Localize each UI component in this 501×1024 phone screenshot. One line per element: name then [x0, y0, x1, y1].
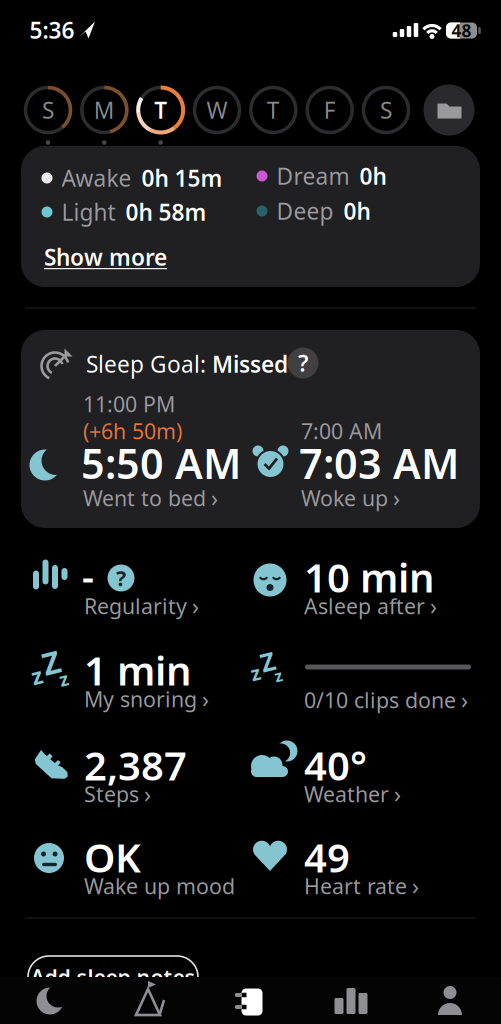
staticText: ›	[394, 779, 401, 809]
staticText: 7:00 AM	[301, 417, 382, 445]
button[interactable]: Sleep sessions	[423, 84, 474, 135]
button[interactable]: T	[132, 82, 189, 162]
button[interactable]: T	[245, 82, 302, 162]
staticText: ›	[430, 591, 437, 621]
staticText: S	[380, 95, 392, 125]
staticText: OK	[84, 830, 141, 883]
button[interactable]: M	[76, 82, 133, 162]
staticText: z	[59, 667, 68, 691]
staticText: ›	[144, 779, 151, 809]
staticText: Went to bed	[83, 484, 206, 512]
button[interactable]: F	[301, 82, 358, 162]
button[interactable]: Show more	[44, 242, 167, 272]
button[interactable]: About regularity	[107, 564, 134, 592]
staticText: ›	[461, 685, 468, 715]
staticText: Weather	[304, 780, 389, 808]
staticText: Steps	[84, 780, 139, 808]
button[interactable]: Went to bed	[83, 483, 218, 513]
staticText: 0h	[359, 161, 386, 191]
button[interactable]: 0/10 clips done	[304, 685, 468, 715]
staticText: 49	[304, 830, 350, 883]
staticText: ›	[211, 483, 218, 513]
staticText: 0h	[343, 196, 370, 226]
staticText: ›	[192, 591, 199, 621]
staticText: 5:50 AM	[81, 436, 241, 490]
staticText: W	[206, 95, 227, 125]
staticText: Deep	[276, 196, 333, 226]
staticText: z	[274, 665, 282, 686]
staticText: 1 min	[84, 643, 192, 696]
button[interactable]: OK	[84, 838, 274, 902]
staticText: Heart rate	[304, 872, 407, 900]
button[interactable]: Woke up	[301, 483, 400, 513]
staticText: Missed	[212, 349, 288, 379]
staticText: 48	[451, 19, 471, 42]
button[interactable]: W	[188, 82, 245, 162]
staticText: 5:36	[29, 15, 74, 45]
button[interactable]: Profile	[410, 977, 490, 1024]
staticText: Dream	[276, 161, 349, 191]
staticText: ›	[412, 871, 419, 901]
staticText: 0h 15m	[141, 163, 222, 193]
staticText: z	[251, 659, 261, 686]
staticText: Add sleep notes	[30, 963, 195, 991]
staticText: Regularity	[84, 592, 187, 620]
staticText: T	[267, 95, 280, 125]
staticText: 0/10 clips done	[304, 686, 456, 714]
staticText: z	[31, 660, 42, 691]
staticText: M	[94, 95, 115, 125]
staticText: ?	[298, 348, 308, 378]
staticText: 0h 58m	[125, 197, 206, 227]
button[interactable]: Sleep	[10, 977, 90, 1024]
staticText: Woke up	[301, 484, 388, 512]
staticText: Sleep Goal:	[86, 349, 212, 379]
button[interactable]: About sleep goal	[287, 347, 318, 378]
button[interactable]: Regularity	[84, 591, 199, 621]
staticText: S	[42, 95, 54, 125]
button[interactable]: S	[19, 82, 76, 162]
staticText: 10 min	[304, 550, 435, 603]
staticText: T	[154, 95, 167, 125]
button[interactable]: Add sleep notes	[28, 956, 198, 998]
staticText: ›	[202, 684, 209, 714]
button[interactable]: 49	[304, 838, 494, 902]
button[interactable]: 1 min	[84, 651, 274, 715]
staticText: Wake up mood	[84, 872, 235, 900]
staticText: My snoring	[84, 685, 197, 713]
button[interactable]: Journal	[210, 977, 290, 1024]
staticText: 2,387	[84, 738, 187, 791]
staticText: 11:00 PM	[83, 390, 175, 418]
staticText: Show more	[44, 242, 167, 272]
button[interactable]: 40°	[304, 746, 494, 810]
staticText: Light	[61, 197, 115, 227]
button[interactable]: 2,387	[84, 746, 274, 810]
staticText: ?	[116, 564, 126, 592]
button[interactable]: Statistics	[310, 977, 390, 1024]
staticText: Z	[42, 642, 60, 682]
staticText: 40°	[304, 738, 367, 791]
button[interactable]: Wind down	[110, 977, 190, 1024]
button[interactable]: S	[357, 82, 414, 162]
staticText: Asleep after	[304, 592, 425, 620]
staticText: -	[82, 551, 94, 601]
button[interactable]: 10 min	[304, 558, 494, 622]
staticText: ›	[393, 483, 400, 513]
staticText: Z	[260, 644, 275, 678]
staticText: 7:03 AM	[299, 436, 459, 490]
staticText: (+6h 50m)	[83, 417, 182, 445]
staticText: Awake	[61, 163, 131, 193]
staticText: F	[324, 95, 336, 125]
